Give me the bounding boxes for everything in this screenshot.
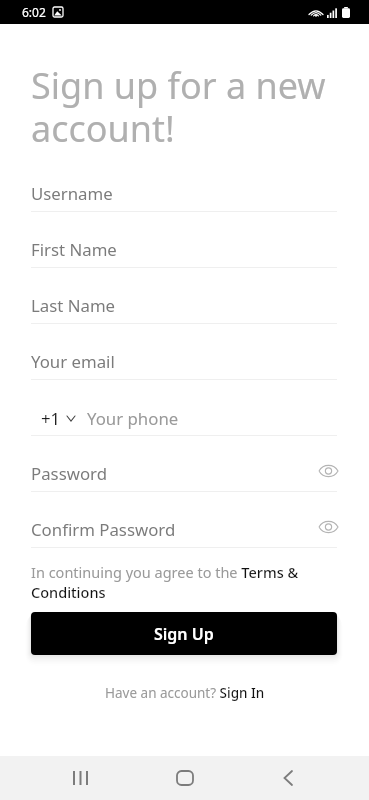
button[interactable]: In continuing you agree to the Terms & C…	[31, 562, 337, 602]
staticText: Your phone	[87, 407, 179, 430]
button[interactable]: First Name	[31, 233, 337, 267]
staticText: Sign Up	[154, 623, 214, 645]
button[interactable]: Password	[31, 457, 337, 491]
button[interactable]: Last Name	[31, 289, 337, 323]
button[interactable]: Confirm Password	[31, 513, 337, 547]
button[interactable]: Your email	[31, 345, 337, 379]
staticText: Last Name	[31, 294, 116, 317]
button[interactable]: Username	[31, 177, 337, 211]
button[interactable]: Show password	[316, 459, 340, 483]
staticText: Sign up for a new account!	[31, 61, 331, 153]
button[interactable]: Recent apps	[58, 756, 103, 800]
button[interactable]: Back	[265, 756, 310, 800]
staticText: Username	[31, 182, 113, 205]
button[interactable]: Show password	[316, 515, 340, 539]
staticText: First Name	[31, 238, 117, 261]
staticText: Your email	[31, 350, 115, 373]
button[interactable]: Sign Up	[31, 612, 337, 655]
staticText: +1	[41, 407, 61, 430]
staticText: Confirm Password	[31, 518, 176, 541]
staticText: 6:02	[22, 4, 46, 20]
button[interactable]: Home	[162, 756, 207, 800]
staticText: Password	[31, 462, 107, 485]
button[interactable]: +1	[31, 407, 77, 430]
button[interactable]: Your phone	[87, 407, 337, 430]
button[interactable]: Have an account? Sign In	[105, 684, 265, 702]
